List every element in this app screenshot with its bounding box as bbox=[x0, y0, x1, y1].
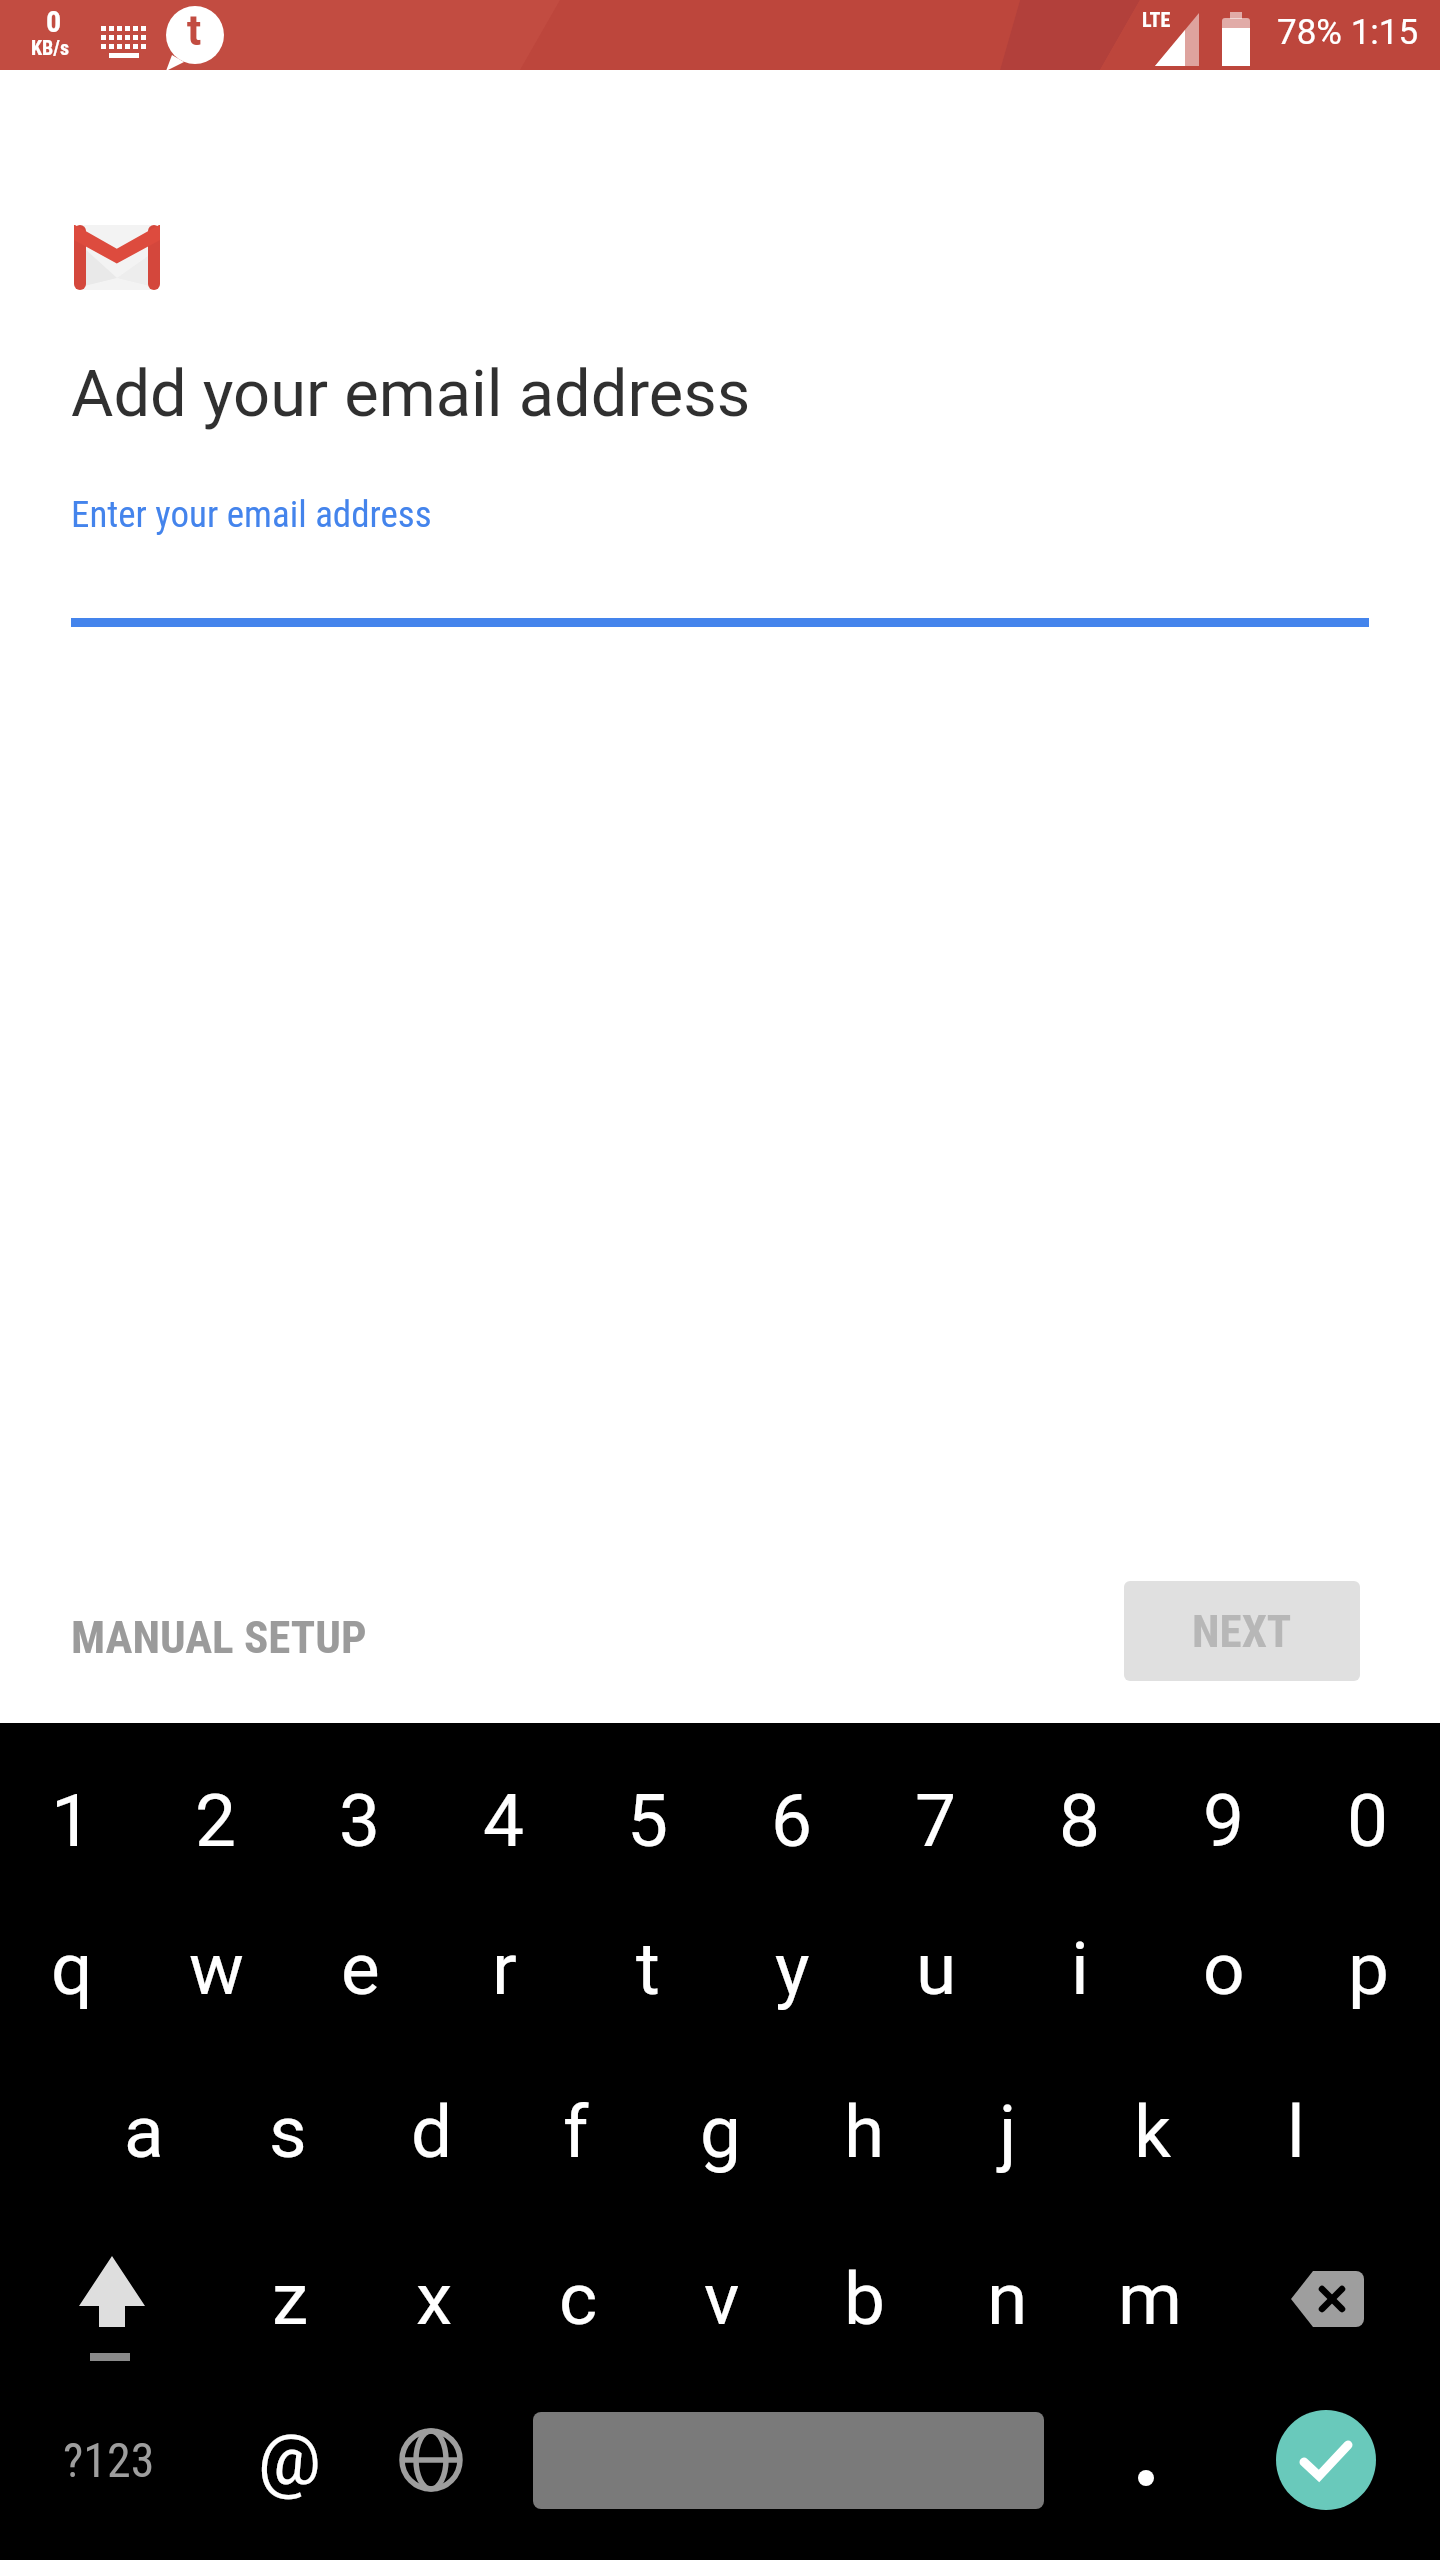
button[interactable]: y bbox=[720, 1889, 864, 2049]
staticText: 4 bbox=[483, 1778, 525, 1864]
staticText: l bbox=[1287, 2089, 1305, 2175]
button[interactable]: 8 bbox=[1008, 1741, 1152, 1901]
button[interactable]: m bbox=[1079, 2219, 1222, 2379]
button[interactable]: ?123 bbox=[0, 2380, 218, 2540]
staticText: v bbox=[704, 2256, 740, 2342]
staticText: 7 bbox=[915, 1778, 957, 1864]
staticText: 78% 1:15 bbox=[1277, 12, 1419, 53]
button[interactable]: n bbox=[936, 2219, 1079, 2379]
button[interactable]: a bbox=[72, 2052, 216, 2212]
button[interactable]: 5 bbox=[576, 1741, 720, 1901]
button[interactable]: 4 bbox=[432, 1741, 576, 1901]
staticText: y bbox=[775, 1926, 810, 2012]
staticText: h bbox=[844, 2089, 885, 2175]
staticText: x bbox=[416, 2256, 453, 2342]
staticText: n bbox=[987, 2256, 1028, 2342]
staticText: o bbox=[1203, 1926, 1245, 2012]
button[interactable]: 1 bbox=[0, 1741, 144, 1901]
staticText: LTE bbox=[1142, 8, 1171, 31]
staticText: Add your email address bbox=[71, 356, 751, 432]
staticText: g bbox=[700, 2089, 741, 2175]
staticText: q bbox=[51, 1926, 93, 2012]
button[interactable]: x bbox=[362, 2219, 506, 2379]
staticText: 0 bbox=[1347, 1778, 1389, 1864]
button[interactable]: k bbox=[1080, 2052, 1224, 2212]
button[interactable] bbox=[533, 2412, 1044, 2509]
button[interactable]: b bbox=[793, 2219, 936, 2379]
button[interactable]: r bbox=[432, 1889, 576, 2049]
staticText: MANUAL SETUP bbox=[71, 1611, 367, 1664]
button[interactable] bbox=[1044, 2380, 1248, 2540]
staticText: t bbox=[636, 1926, 660, 2012]
button[interactable]: @ bbox=[218, 2380, 360, 2540]
staticText: u bbox=[916, 1926, 957, 2012]
staticText: a bbox=[124, 2089, 164, 2175]
button[interactable]: 7 bbox=[864, 1741, 1008, 1901]
button[interactable]: q bbox=[0, 1889, 144, 2049]
button[interactable]: l bbox=[1224, 2052, 1368, 2212]
staticText: 8 bbox=[1059, 1778, 1101, 1864]
button[interactable] bbox=[1222, 2219, 1440, 2379]
staticText: @ bbox=[258, 2419, 321, 2501]
button[interactable]: c bbox=[506, 2219, 650, 2379]
staticText: f bbox=[563, 2089, 589, 2175]
button[interactable]: NEXT bbox=[1124, 1581, 1360, 1681]
button[interactable]: i bbox=[1008, 1889, 1152, 2049]
button[interactable]: f bbox=[504, 2052, 648, 2212]
staticText: NEXT bbox=[1192, 1605, 1292, 1658]
staticText: d bbox=[411, 2089, 453, 2175]
button[interactable]: MANUAL SETUP bbox=[40, 1597, 387, 1677]
button[interactable] bbox=[360, 2380, 502, 2540]
staticText: b bbox=[844, 2256, 885, 2342]
button[interactable]: s bbox=[216, 2052, 360, 2212]
button[interactable]: u bbox=[864, 1889, 1008, 2049]
staticText: r bbox=[492, 1926, 517, 2012]
staticText: 3 bbox=[339, 1778, 381, 1864]
button[interactable] bbox=[1276, 2410, 1376, 2510]
staticText: e bbox=[341, 1926, 380, 2012]
staticText: 1 bbox=[51, 1778, 93, 1864]
staticText: 2 bbox=[195, 1778, 237, 1864]
staticText: 5 bbox=[627, 1778, 669, 1864]
button[interactable] bbox=[74, 225, 160, 290]
button[interactable]: e bbox=[288, 1889, 432, 2049]
staticText: z bbox=[272, 2256, 309, 2342]
button[interactable]: 9 bbox=[1152, 1741, 1296, 1901]
button[interactable]: v bbox=[650, 2219, 793, 2379]
staticText: t bbox=[187, 6, 202, 55]
button[interactable]: 2 bbox=[144, 1741, 288, 1901]
button[interactable]: z bbox=[218, 2219, 362, 2379]
staticText: ?123 bbox=[63, 2432, 155, 2488]
staticText: p bbox=[1348, 1926, 1389, 2012]
staticText: 0 bbox=[46, 4, 62, 39]
staticText: w bbox=[189, 1926, 244, 2012]
staticText: 9 bbox=[1203, 1778, 1245, 1864]
button[interactable]: t bbox=[576, 1889, 720, 2049]
staticText: m bbox=[1118, 2256, 1183, 2342]
button[interactable]: h bbox=[792, 2052, 936, 2212]
staticText: j bbox=[999, 2089, 1017, 2175]
staticText: c bbox=[559, 2256, 598, 2342]
button[interactable]: o bbox=[1152, 1889, 1296, 2049]
button[interactable]: 0 bbox=[1296, 1741, 1440, 1901]
button[interactable] bbox=[0, 2219, 218, 2379]
staticText: k bbox=[1134, 2089, 1171, 2175]
staticText: i bbox=[1071, 1926, 1089, 2012]
staticText: 6 bbox=[771, 1778, 813, 1864]
button[interactable]: Enter your email address bbox=[0, 470, 1440, 640]
staticText: s bbox=[269, 2089, 307, 2175]
staticText: Enter your email address bbox=[71, 493, 432, 536]
button[interactable]: 6 bbox=[720, 1741, 864, 1901]
button[interactable]: j bbox=[936, 2052, 1080, 2212]
button[interactable]: g bbox=[648, 2052, 792, 2212]
button[interactable]: d bbox=[360, 2052, 504, 2212]
button[interactable]: w bbox=[144, 1889, 288, 2049]
button[interactable]: 3 bbox=[288, 1741, 432, 1901]
staticText: KB/s bbox=[31, 36, 69, 59]
button[interactable]: p bbox=[1296, 1889, 1440, 2049]
